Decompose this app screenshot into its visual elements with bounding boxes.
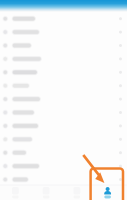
button[interactable]: Me bbox=[92, 186, 123, 200]
button[interactable] bbox=[0, 159, 127, 173]
button[interactable] bbox=[0, 133, 127, 146]
button[interactable]: Tab bbox=[61, 186, 92, 200]
button[interactable] bbox=[0, 25, 127, 39]
button[interactable] bbox=[0, 92, 127, 106]
button[interactable] bbox=[0, 146, 127, 159]
button[interactable] bbox=[0, 52, 127, 66]
button[interactable] bbox=[0, 39, 127, 52]
button[interactable] bbox=[0, 79, 127, 92]
button[interactable] bbox=[0, 66, 127, 79]
button[interactable] bbox=[0, 12, 127, 25]
button[interactable] bbox=[0, 173, 127, 186]
button[interactable] bbox=[0, 106, 127, 119]
button[interactable] bbox=[0, 119, 127, 133]
